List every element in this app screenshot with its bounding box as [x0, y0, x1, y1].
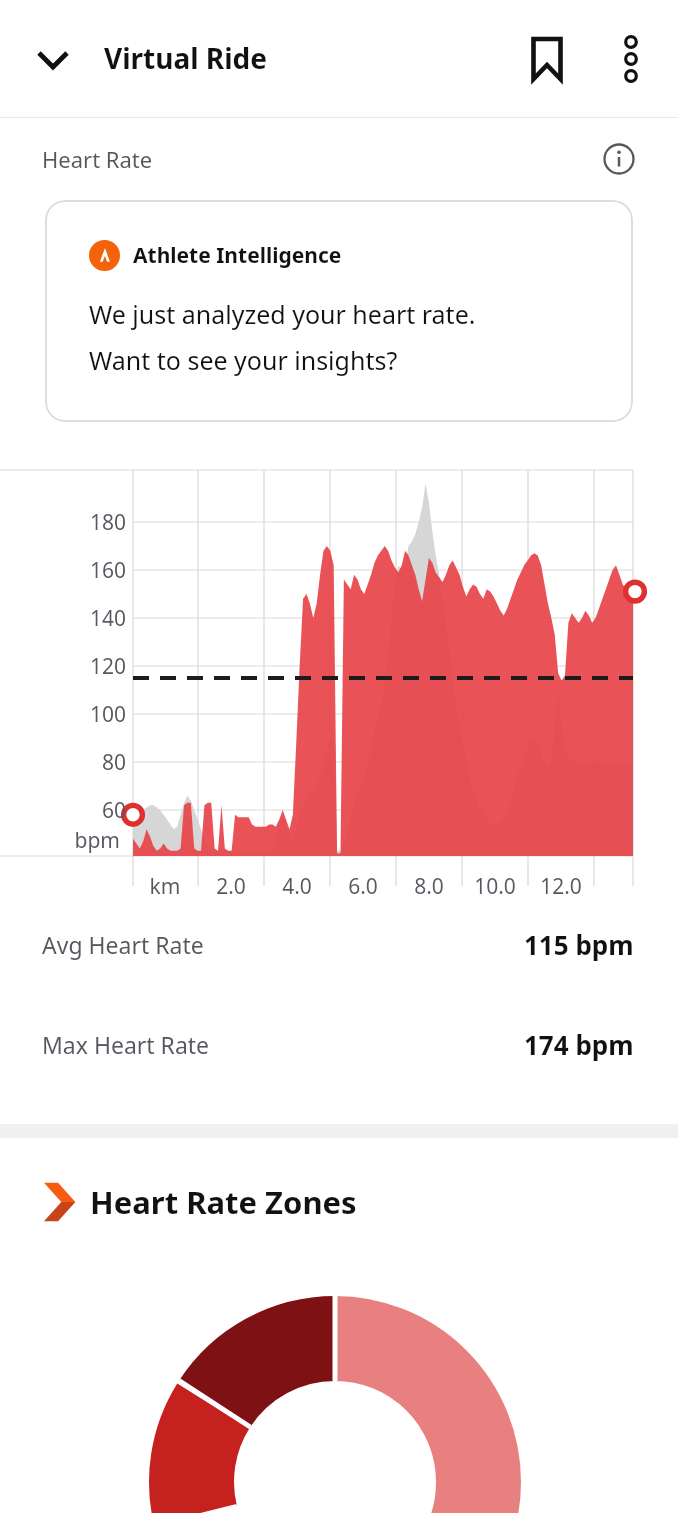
staticText: Virtual Ride	[104, 39, 267, 77]
staticText: 115 bpm	[524, 927, 634, 962]
staticText: 60	[0, 796, 126, 825]
staticText: 120	[0, 652, 126, 681]
button[interactable]: More options	[600, 28, 662, 90]
staticText: km	[125, 872, 205, 901]
button[interactable]: Athlete Intelligence	[45, 200, 633, 422]
staticText: 100	[0, 700, 126, 729]
staticText: 174 bpm	[524, 1027, 634, 1062]
staticText: bpm	[0, 826, 120, 855]
staticText: 6.0	[323, 872, 403, 901]
staticText: Max Heart Rate	[42, 1029, 210, 1060]
staticText: Want to see your insights?	[89, 343, 398, 377]
staticText: 140	[0, 604, 126, 633]
staticText: Avg Heart Rate	[42, 929, 204, 960]
button[interactable]: Avg Heart Rate	[0, 926, 678, 962]
button[interactable]: Max Heart Rate	[0, 1026, 678, 1062]
staticText: We just analyzed your heart rate.	[89, 297, 476, 331]
button[interactable]: Information	[595, 135, 643, 183]
staticText: 12.0	[521, 872, 601, 901]
staticText: 180	[0, 508, 126, 537]
staticText: 8.0	[389, 872, 469, 901]
staticText: 2.0	[191, 872, 271, 901]
button[interactable]: Bookmark	[516, 28, 578, 90]
staticText: 10.0	[455, 872, 535, 901]
staticText: 80	[0, 748, 126, 777]
button[interactable]	[0, 1230, 678, 1460]
staticText: Athlete Intelligence	[133, 241, 342, 270]
staticText: Heart Rate Zones	[90, 1181, 357, 1223]
staticText: 4.0	[257, 872, 337, 901]
staticText: 160	[0, 556, 126, 585]
button[interactable]: Collapse	[22, 28, 84, 90]
staticText: Heart Rate	[42, 144, 153, 174]
